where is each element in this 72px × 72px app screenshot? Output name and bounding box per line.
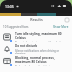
button[interactable]: Do not disturb [0, 42, 72, 54]
staticText: Reduce background activity to save power [15, 65, 67, 66]
staticText: Do not disturb [15, 44, 38, 48]
staticText: 10 Suggested fixes [3, 25, 29, 29]
button[interactable]: Turn idle styling, maximum 80 Celsius [0, 30, 72, 42]
staticText: Prevent charging issues and keep battery… [15, 41, 69, 42]
button[interactable]: Blocking, normal process, maximum 80 Cel… [0, 54, 72, 66]
staticText: Silence notifications when driving or sl… [15, 49, 69, 54]
staticText: Results [30, 17, 43, 22]
staticText: 13:05 [5, 4, 14, 9]
button[interactable]: Show More [53, 25, 69, 29]
staticText: Blocking, normal process, maximum 80 Cel… [15, 56, 69, 64]
staticText: Turn idle styling, maximum 80 Celsius [15, 32, 69, 40]
staticText: Show More [53, 25, 69, 29]
button[interactable]: More options [65, 18, 69, 22]
